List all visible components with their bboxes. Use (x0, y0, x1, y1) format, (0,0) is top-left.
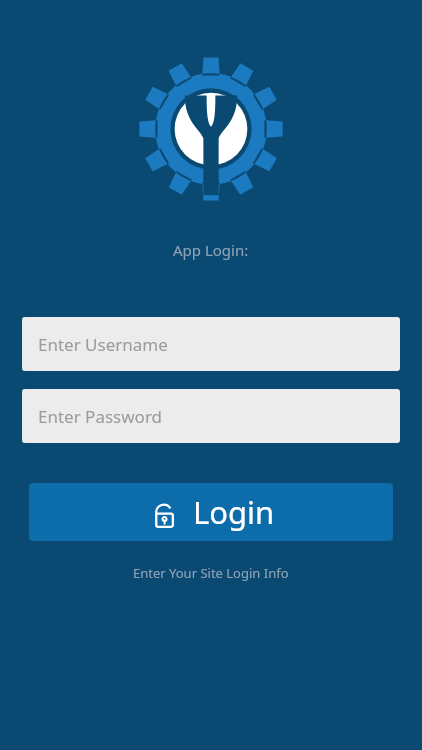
button[interactable]: Enter Password (22, 389, 400, 443)
button[interactable]: Unlock (29, 483, 393, 541)
staticText: Enter Password (38, 405, 163, 428)
staticText: Enter Your Site Login Info (133, 564, 289, 582)
staticText: Enter Username (38, 333, 168, 356)
other: Unlock (147, 497, 174, 528)
button[interactable]: Enter Username (22, 317, 400, 371)
staticText: App Login: (173, 240, 249, 260)
staticText: Login (193, 491, 275, 533)
